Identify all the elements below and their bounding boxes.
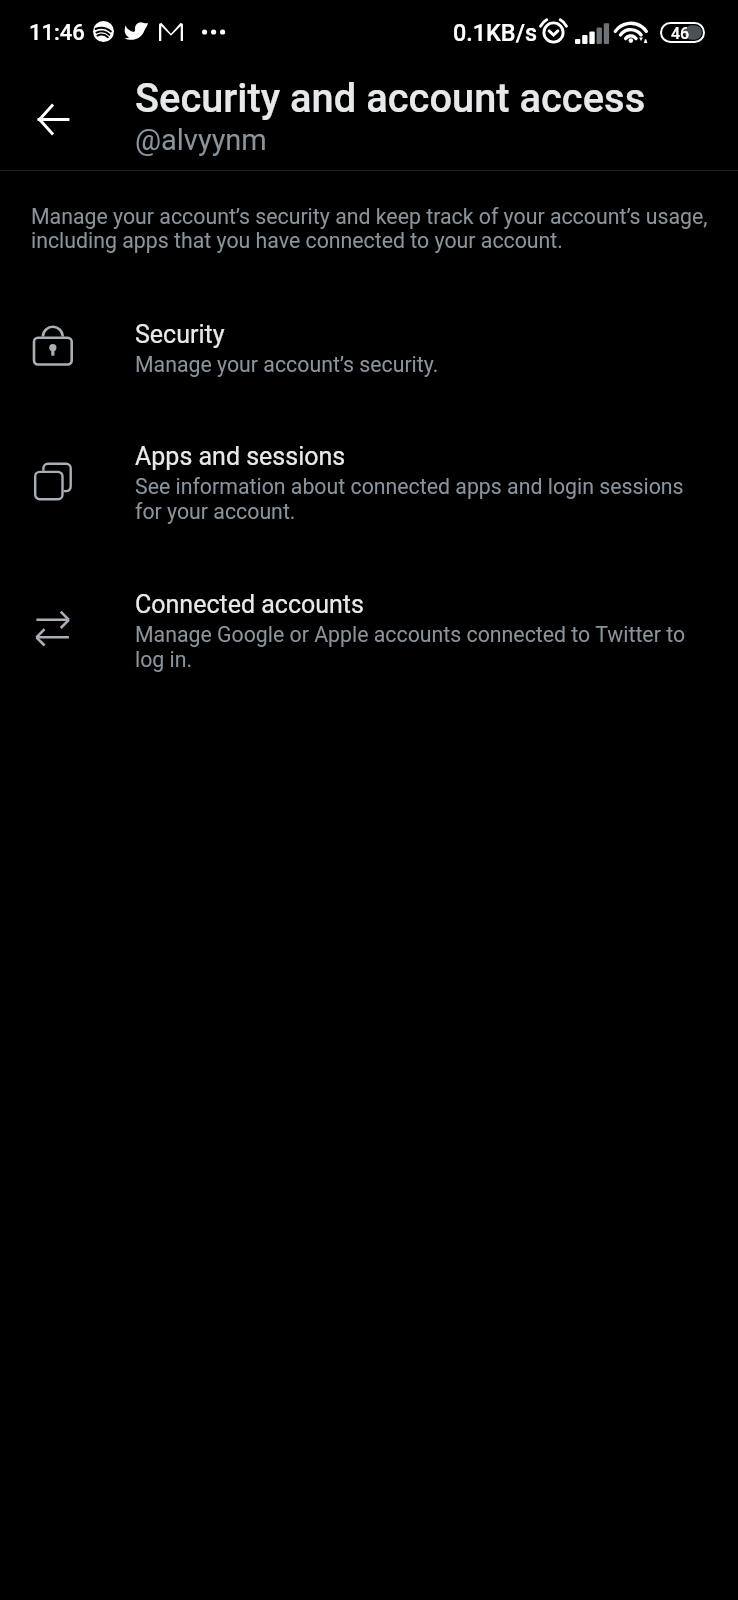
staticText: 46: [671, 24, 690, 43]
button[interactable]: Connected accounts: [0, 573, 738, 695]
button[interactable]: Back: [16, 82, 90, 156]
button[interactable]: Apps and sessions: [0, 425, 738, 547]
staticText: Manage your account’s security and keep …: [31, 205, 708, 253]
staticText: Manage Google or Apple accounts connecte…: [135, 623, 686, 673]
staticText: Connected accounts: [135, 589, 364, 619]
staticText: Security and account access: [135, 76, 646, 122]
button[interactable]: Security: [0, 303, 738, 403]
staticText: @alvyynm: [135, 124, 267, 157]
staticText: 11:46: [29, 20, 85, 46]
staticText: 0.1KB/s: [453, 19, 537, 46]
staticText: Manage your account’s security.: [135, 353, 439, 378]
staticText: See information about connected apps and…: [135, 475, 684, 525]
staticText: Security: [135, 319, 225, 349]
staticText: Apps and sessions: [135, 441, 346, 471]
